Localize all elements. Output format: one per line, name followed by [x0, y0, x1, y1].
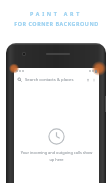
staticText: Your incoming and outgoing calls show up… [18, 150, 95, 163]
button[interactable]: Search contacts & places [14, 74, 99, 85]
staticText: PAINT ART [30, 10, 82, 17]
staticText: FOR CORNER BACKGROUND [14, 20, 99, 27]
other: More options [92, 78, 96, 82]
other: Voice search [86, 78, 90, 82]
staticText: Search contacts & places [25, 77, 74, 83]
